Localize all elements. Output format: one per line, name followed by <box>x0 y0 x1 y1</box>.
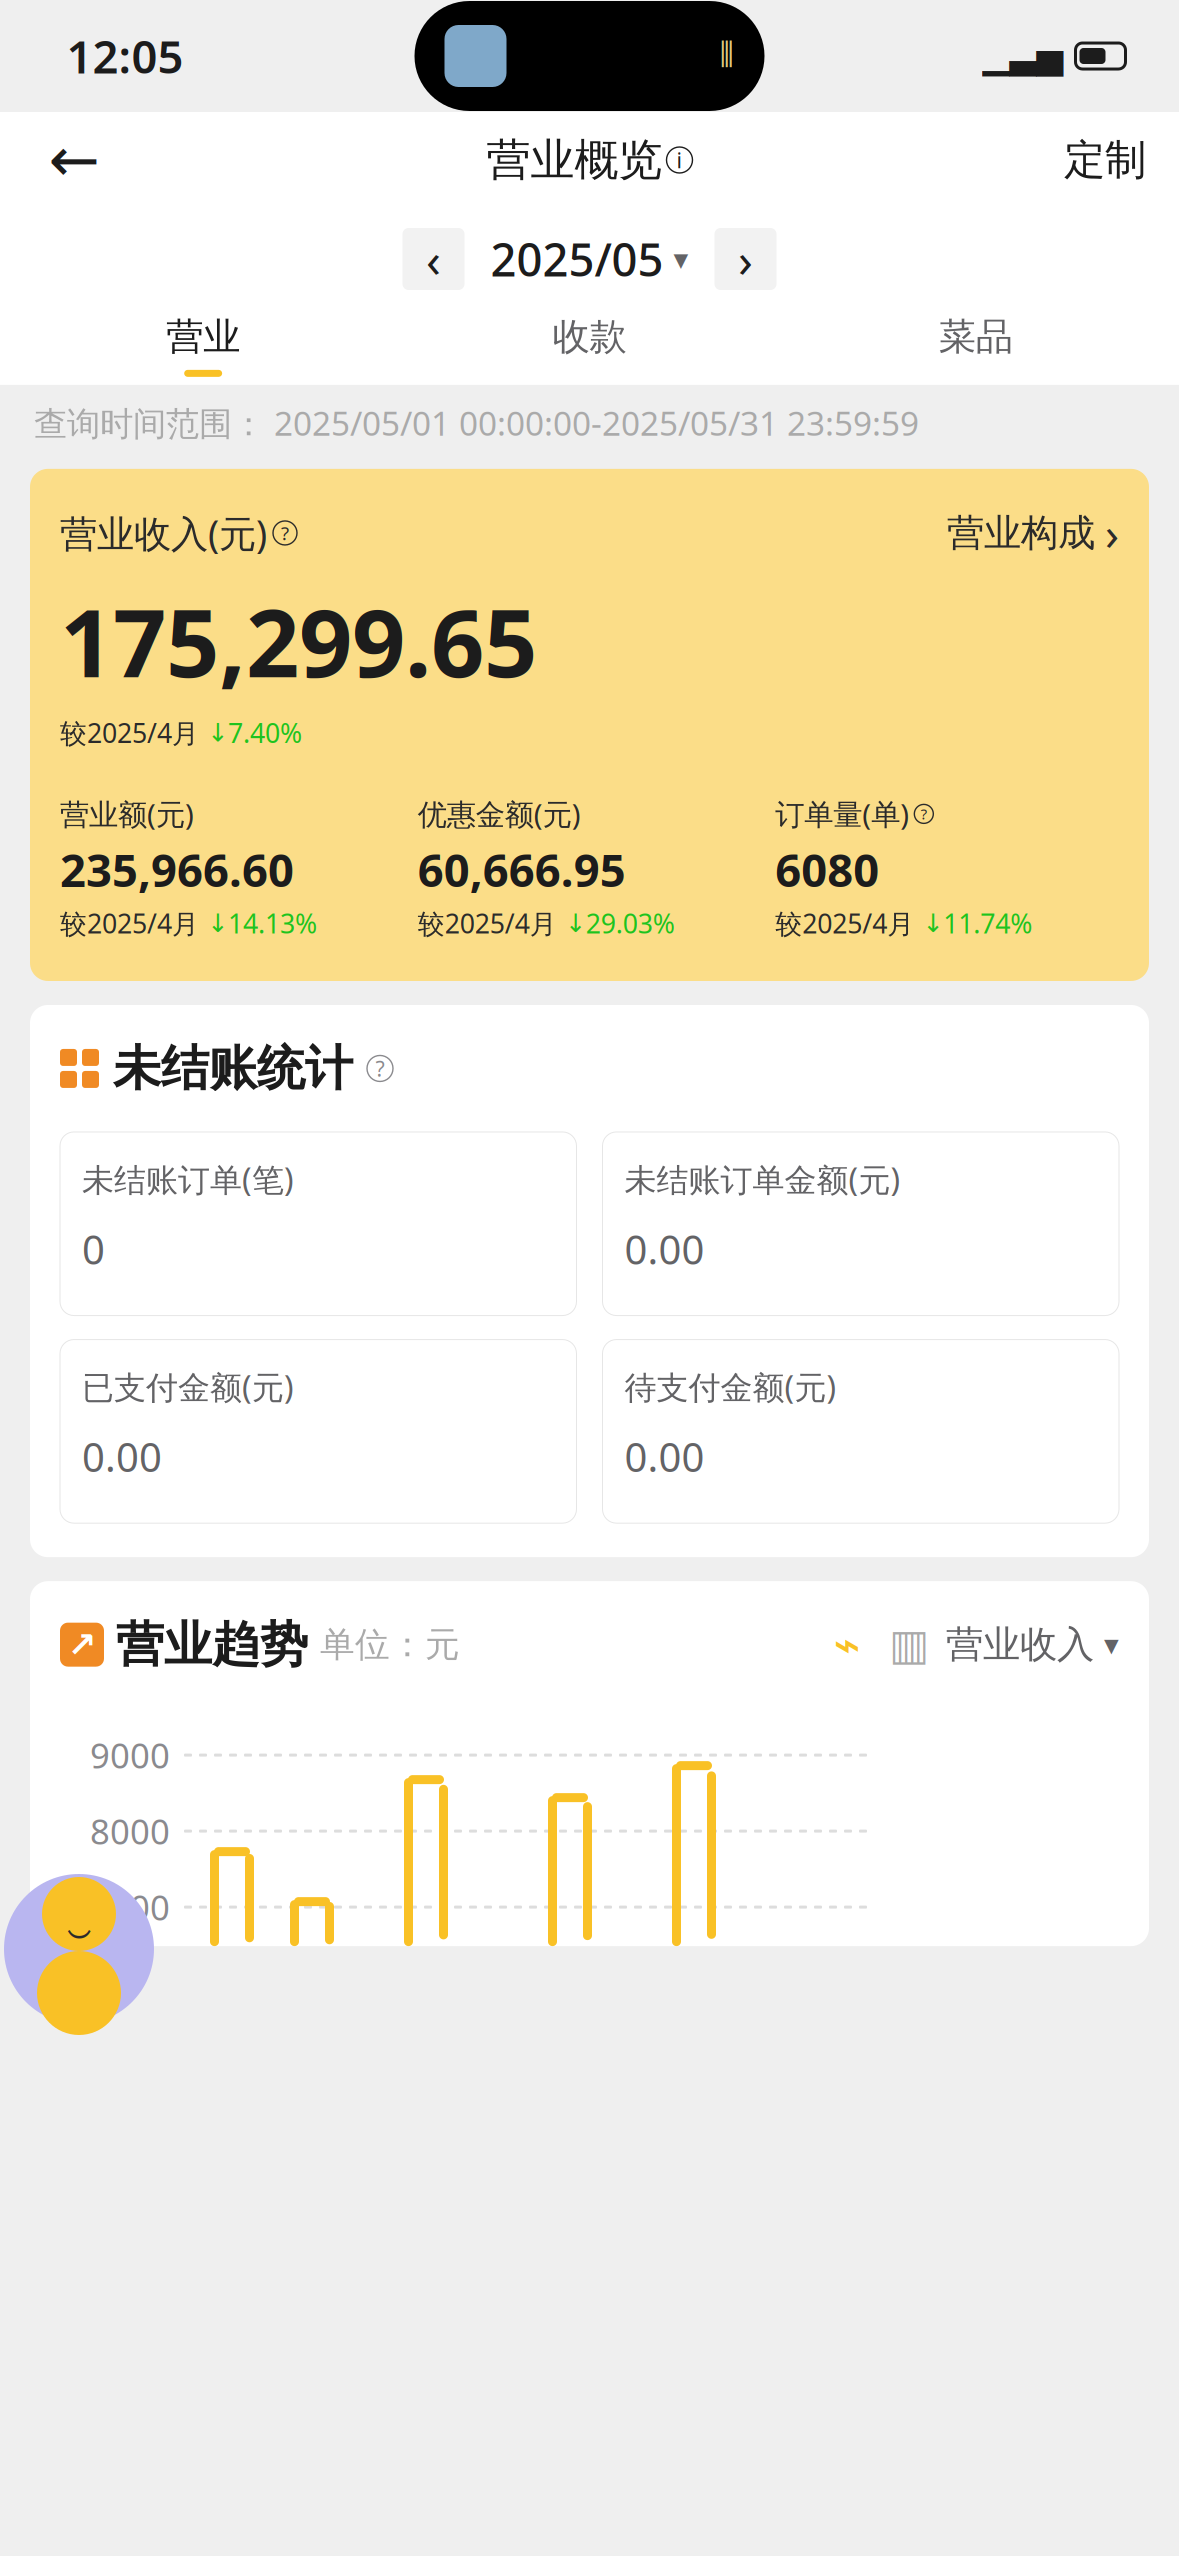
staticText: ▾ <box>1104 1628 1119 1661</box>
button[interactable]: 2025/05 <box>464 228 714 290</box>
staticText: ↗ <box>67 1625 96 1664</box>
staticText: ? <box>281 521 289 545</box>
staticText: 未结账订单金额(元) <box>624 1158 900 1200</box>
staticText: ↓ <box>914 909 943 938</box>
staticText: 较2025/4月 <box>775 906 914 941</box>
staticText: 较2025/4月 <box>60 715 199 750</box>
button[interactable]: 未结账订单(笔) <box>60 1132 576 1315</box>
staticText: ▾ <box>673 242 688 276</box>
staticText: 7.40% <box>228 715 302 750</box>
staticText: i <box>676 146 682 174</box>
staticText: 未结账订单(笔) <box>82 1158 294 1200</box>
staticText: 0.00 <box>82 1430 162 1483</box>
button[interactable]: 收款 <box>396 304 783 385</box>
staticText: ? <box>921 804 927 824</box>
staticText: ‹ <box>426 227 441 291</box>
button[interactable]: 营业收入 <box>946 1622 1119 1668</box>
staticText: 定制 <box>1064 135 1146 185</box>
button[interactable]: Back <box>14 120 134 200</box>
button[interactable]: Bar chart <box>884 1620 934 1670</box>
staticText: 2025/05 <box>490 229 663 289</box>
staticText: 待支付金额(元) <box>624 1365 836 1408</box>
staticText: 7000 <box>90 1884 170 1930</box>
staticText: › <box>738 227 753 291</box>
staticText: ‿ <box>67 1887 91 1940</box>
staticText: 14.13% <box>228 906 317 941</box>
button[interactable]: 营业 <box>10 304 396 385</box>
staticText: 12:05 <box>66 26 183 86</box>
staticText: 菜品 <box>939 314 1013 360</box>
staticText: 60,666.95 <box>418 839 626 900</box>
staticText: 9000 <box>90 1732 170 1778</box>
button[interactable]: Previous month <box>402 228 464 290</box>
button[interactable]: Next month <box>714 228 776 290</box>
staticText: › <box>1105 503 1119 563</box>
staticText: ⦀ <box>719 39 734 73</box>
staticText: 29.03% <box>586 906 675 941</box>
staticText: 营业构成 <box>947 510 1095 556</box>
staticText: 较2025/4月 <box>418 906 557 941</box>
button[interactable]: 待支付金额(元) <box>602 1339 1119 1523</box>
staticText: 175,299.65 <box>60 579 537 703</box>
staticText: 营业概览 <box>486 133 662 187</box>
staticText: 11.74% <box>943 906 1032 941</box>
staticText: 单位：元 <box>320 1623 460 1666</box>
staticText: 未结账统计 <box>113 1039 353 1098</box>
staticText: ↓ <box>557 909 586 938</box>
staticText: 收款 <box>552 314 626 360</box>
button[interactable]: Line chart <box>822 1620 872 1670</box>
staticText: ⌁ <box>833 1619 860 1670</box>
staticText: 订单量(单) <box>775 794 909 833</box>
staticText: 营业收入(元) <box>60 508 267 558</box>
staticText: 优惠金额(元) <box>418 794 581 833</box>
button[interactable]: 菜品 <box>783 304 1169 385</box>
staticText: ↓ <box>199 909 228 938</box>
button[interactable]: 已支付金额(元) <box>60 1339 576 1523</box>
staticText: 6080 <box>775 839 879 900</box>
staticText: ↓ <box>199 718 228 747</box>
staticText: 0.00 <box>624 1222 704 1275</box>
staticText: 8000 <box>90 1808 170 1854</box>
staticText: 已支付金额(元) <box>82 1365 294 1408</box>
staticText: 0.00 <box>624 1430 704 1483</box>
staticText: 较2025/4月 <box>60 906 199 941</box>
staticText: 营业收入 <box>946 1622 1094 1668</box>
staticText: 营业 <box>166 314 240 360</box>
staticText: 营业额(元) <box>60 794 194 833</box>
button[interactable]: 营业构成 <box>947 503 1119 563</box>
button[interactable]: 未结账订单金额(元) <box>602 1132 1119 1315</box>
staticText: ← <box>48 125 99 195</box>
staticText: 查询时间范围： 2025/05/01 00:00:00-2025/05/31 2… <box>34 401 919 445</box>
staticText: ▁▃▅ <box>982 36 1063 76</box>
button[interactable]: 定制 <box>1045 120 1165 200</box>
staticText: ▥ <box>889 1620 929 1669</box>
staticText: 0 <box>82 1222 105 1275</box>
staticText: 营业趋势 <box>116 1615 308 1674</box>
staticText: 235,966.60 <box>60 839 294 900</box>
staticText: ? <box>375 1054 384 1083</box>
